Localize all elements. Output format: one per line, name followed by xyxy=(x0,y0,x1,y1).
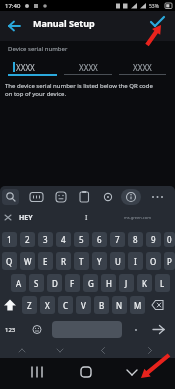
button[interactable]: 6 xyxy=(92,232,107,247)
button[interactable]: Q xyxy=(2,252,17,270)
button[interactable]: K xyxy=(137,274,152,292)
button[interactable]: F xyxy=(65,274,80,292)
button[interactable] xyxy=(122,320,146,339)
staticText: 7 xyxy=(115,234,120,245)
staticText: The device serial number is listed below… xyxy=(5,82,153,98)
staticText: S xyxy=(34,278,39,289)
button[interactable] xyxy=(28,320,52,339)
button[interactable]: W xyxy=(20,252,35,270)
staticText: G xyxy=(88,278,94,289)
button[interactable] xyxy=(117,358,175,389)
button[interactable]: L xyxy=(155,274,170,292)
button[interactable] xyxy=(59,207,117,228)
staticText: 2 xyxy=(25,234,30,245)
button[interactable] xyxy=(147,296,167,314)
button[interactable]: 7 xyxy=(110,232,125,247)
button[interactable]: B xyxy=(94,296,109,314)
button[interactable]: P xyxy=(164,252,175,270)
button[interactable]: M xyxy=(130,296,145,314)
button[interactable]: Y xyxy=(92,252,107,270)
button[interactable] xyxy=(52,320,122,339)
staticText: H xyxy=(106,278,112,289)
button[interactable] xyxy=(145,11,175,41)
button[interactable]: 0 xyxy=(164,232,175,247)
button[interactable]: Z xyxy=(22,296,37,314)
staticText: Z xyxy=(27,300,32,311)
staticText: K xyxy=(142,278,147,289)
staticText: 4 xyxy=(61,234,66,245)
staticText: Q xyxy=(6,256,13,267)
button[interactable] xyxy=(146,320,175,339)
button[interactable]: R xyxy=(56,252,71,270)
button[interactable]: J xyxy=(119,274,134,292)
staticText: 5 xyxy=(79,234,84,245)
staticText: N xyxy=(116,300,123,311)
button[interactable]: H xyxy=(101,274,116,292)
staticText: 8 xyxy=(133,234,138,245)
button[interactable]: 9 xyxy=(146,232,161,247)
staticText: O xyxy=(150,256,157,267)
staticText: C xyxy=(63,300,69,311)
button[interactable]: A xyxy=(11,274,26,292)
staticText: L xyxy=(160,278,165,289)
button[interactable]: XXXX xyxy=(64,60,112,75)
staticText: E xyxy=(43,256,48,267)
button[interactable] xyxy=(0,207,59,228)
button[interactable] xyxy=(52,321,122,338)
button[interactable]: 3 xyxy=(38,232,53,247)
staticText: 53% xyxy=(149,3,159,10)
button[interactable]: XXXX xyxy=(8,60,57,76)
button[interactable]: I xyxy=(128,252,143,270)
button[interactable]: 1 xyxy=(2,232,17,247)
button[interactable] xyxy=(125,186,150,207)
button[interactable]: 8 xyxy=(128,232,143,247)
staticText: 17:40 xyxy=(5,2,21,10)
staticText: D xyxy=(52,278,58,289)
button[interactable] xyxy=(25,186,50,207)
button[interactable]: E xyxy=(38,252,53,270)
staticText: Y xyxy=(97,256,102,267)
staticText: Device serial number xyxy=(8,45,68,53)
button[interactable] xyxy=(0,320,28,339)
staticText: W xyxy=(24,256,32,267)
button[interactable]: 2 xyxy=(20,232,35,247)
staticText: XXXX xyxy=(79,62,98,73)
button[interactable] xyxy=(100,186,125,207)
staticText: I xyxy=(134,256,137,267)
staticText: 6 xyxy=(97,234,102,245)
staticText: B xyxy=(99,300,105,311)
staticText: M xyxy=(134,300,142,311)
staticText: I xyxy=(85,213,88,223)
button[interactable] xyxy=(0,186,25,207)
button[interactable]: 5 xyxy=(74,232,89,247)
staticText: HEY xyxy=(19,213,33,223)
staticText: V xyxy=(81,300,86,311)
button[interactable]: U xyxy=(110,252,125,270)
button[interactable]: X xyxy=(40,296,55,314)
button[interactable] xyxy=(50,186,75,207)
button[interactable] xyxy=(150,186,175,207)
staticText: T xyxy=(79,256,84,267)
button[interactable]: C xyxy=(58,296,73,314)
button[interactable] xyxy=(117,207,175,228)
staticText: 0 xyxy=(167,234,172,245)
staticText: P xyxy=(167,256,172,267)
staticText: X xyxy=(45,300,50,311)
button[interactable]: S xyxy=(29,274,44,292)
staticText: R xyxy=(61,256,66,267)
button[interactable]: 4 xyxy=(56,232,71,247)
button[interactable] xyxy=(75,186,100,207)
button[interactable] xyxy=(59,358,117,389)
button[interactable]: XXXX xyxy=(119,60,166,75)
button[interactable]: T xyxy=(74,252,89,270)
button[interactable] xyxy=(0,11,28,41)
button[interactable]: N xyxy=(112,296,127,314)
staticText: U xyxy=(115,256,121,267)
button[interactable]: V xyxy=(76,296,91,314)
button[interactable]: O xyxy=(146,252,161,270)
button[interactable]: G xyxy=(83,274,98,292)
button[interactable]: D xyxy=(47,274,62,292)
button[interactable] xyxy=(0,296,20,314)
button[interactable] xyxy=(0,358,59,389)
staticText: XXXX xyxy=(16,62,35,73)
